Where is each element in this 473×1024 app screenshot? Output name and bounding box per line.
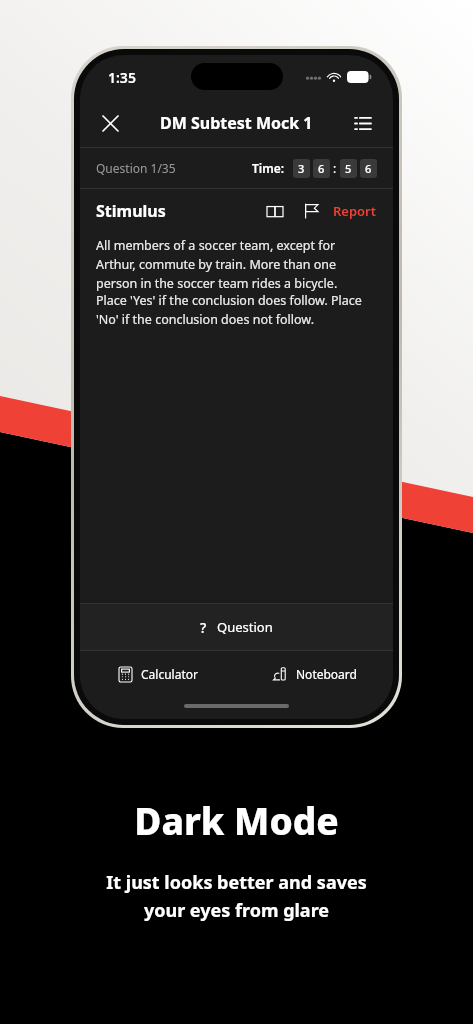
- staticText: All members of a soccer team, except for…: [96, 237, 377, 292]
- button[interactable]: Close: [92, 105, 128, 141]
- button[interactable]: Calculator: [80, 651, 236, 697]
- staticText: Place 'Yes' if the conclusion does follo…: [96, 292, 377, 328]
- staticText: Question: [217, 618, 273, 636]
- staticText: Calculator: [141, 666, 198, 682]
- staticText: :: [333, 160, 337, 176]
- button[interactable]: Flag: [297, 197, 325, 225]
- staticText: Question 1/35: [96, 160, 176, 176]
- staticText: 6: [365, 161, 372, 176]
- button[interactable]: ?: [80, 604, 393, 650]
- button[interactable]: Noteboard: [236, 651, 393, 697]
- staticText: DM Subtest Mock 1: [160, 112, 313, 134]
- staticText: 1:35: [108, 68, 136, 87]
- staticText: Stimulus: [96, 200, 166, 222]
- staticText: Time:: [252, 160, 285, 176]
- button[interactable]: Dictionary: [261, 197, 289, 225]
- button[interactable]: Menu: [345, 105, 381, 141]
- staticText: It just looks better and saves your eyes…: [106, 870, 367, 922]
- staticText: 5: [345, 161, 352, 176]
- staticText: Noteboard: [296, 666, 357, 682]
- staticText: 6: [318, 161, 325, 176]
- staticText: Dark Mode: [134, 795, 339, 845]
- staticText: 3: [298, 161, 305, 176]
- staticText: Report: [333, 202, 377, 220]
- button[interactable]: Report: [333, 202, 377, 220]
- staticText: ?: [200, 618, 207, 637]
